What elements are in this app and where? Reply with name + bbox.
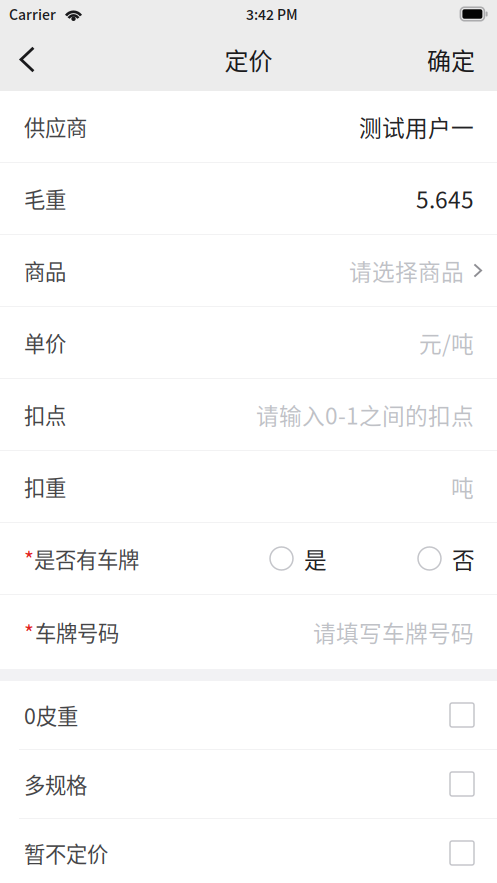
staticText: 单价 [24,327,66,358]
button[interactable]: 0皮重 [0,681,497,749]
button[interactable]: 是 [270,542,327,575]
staticText: 商品 [24,255,66,286]
staticText: 毛重 [24,183,66,214]
staticText: * [24,617,34,647]
staticText: 5.645 [416,182,474,215]
staticText: 扣重 [24,471,66,502]
staticText: 请输入0-1之间的扣点 [256,398,474,431]
button[interactable]: 毛重 [0,163,497,234]
staticText: 车牌号码 [35,617,119,647]
staticText: 多规格 [24,769,87,799]
button[interactable]: 多规格 [0,750,497,818]
staticText: Carrier [9,4,56,24]
button[interactable]: 商品 [0,235,497,306]
button[interactable]: * [0,595,497,669]
staticText: 确定 [427,42,475,77]
staticText: 吨 [451,470,474,503]
staticText: 否 [452,542,475,575]
button[interactable]: 确定 [411,28,491,91]
button[interactable]: 扣重 [0,451,497,522]
button[interactable]: 扣点 [0,379,497,450]
staticText: 3:42 PM [246,4,298,24]
staticText: 扣点 [24,399,66,430]
staticText: 供应商 [24,111,87,142]
staticText: 暂不定价 [24,838,108,868]
staticText: 元/吨 [419,326,474,359]
button[interactable]: 暂不定价 [0,819,497,883]
staticText: 是 [304,542,327,575]
staticText: 请选择商品 [349,254,464,287]
button[interactable]: 单价 [0,307,497,378]
staticText: 测试用户一 [359,110,474,143]
button[interactable]: Back [6,28,47,91]
staticText: 请填写车牌号码 [313,616,474,648]
staticText: 0皮重 [24,700,78,730]
button[interactable]: 供应商 [0,91,497,162]
staticText: * [24,543,34,574]
staticText: 是否有车牌 [34,543,139,574]
staticText: 定价 [224,42,272,77]
button[interactable]: 否 [418,542,475,575]
